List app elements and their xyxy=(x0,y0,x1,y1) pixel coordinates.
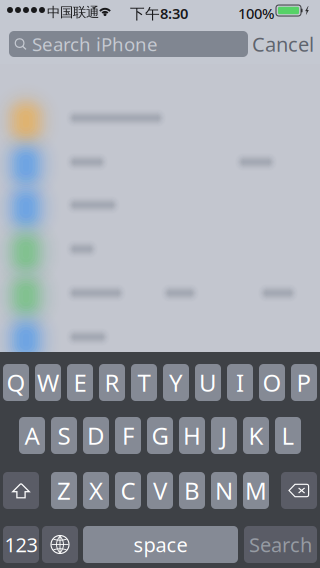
button[interactable]: Delete xyxy=(281,472,317,509)
button[interactable]: F xyxy=(115,417,141,454)
button[interactable]: X xyxy=(83,472,109,509)
button[interactable]: Q xyxy=(3,364,29,401)
button[interactable]: K xyxy=(243,417,269,454)
staticText: Q xyxy=(6,367,25,398)
button[interactable]: J xyxy=(211,417,237,454)
staticText: O xyxy=(262,367,281,398)
button[interactable]: L xyxy=(275,417,301,454)
button[interactable]: O xyxy=(259,364,285,401)
staticText: A xyxy=(24,420,39,451)
button[interactable]: S xyxy=(51,417,77,454)
button[interactable]: U xyxy=(195,364,221,401)
button[interactable]: H xyxy=(179,417,205,454)
staticText: Search iPhone xyxy=(32,32,158,56)
button[interactable]: E xyxy=(67,364,93,401)
button[interactable]: M xyxy=(243,472,269,509)
staticText: 100% xyxy=(238,3,274,23)
staticText: Search xyxy=(249,531,312,558)
staticText: H xyxy=(183,420,201,451)
button[interactable]: A xyxy=(19,417,45,454)
button[interactable]: P xyxy=(291,364,317,401)
button[interactable]: Search xyxy=(244,526,317,563)
staticText: 123 xyxy=(4,531,37,558)
button[interactable]: Z xyxy=(51,472,77,509)
staticText: L xyxy=(281,420,294,451)
staticText: R xyxy=(104,367,119,398)
staticText: I xyxy=(236,367,244,398)
button[interactable]: space xyxy=(83,526,238,563)
staticText: P xyxy=(296,367,311,398)
staticText: T xyxy=(137,367,150,398)
staticText: U xyxy=(199,367,217,398)
button[interactable]: 123 xyxy=(3,526,39,563)
button[interactable]: W xyxy=(35,364,61,401)
staticText: X xyxy=(89,475,103,506)
staticText: S xyxy=(57,420,70,451)
button[interactable]: Next keyboard xyxy=(42,526,78,563)
button[interactable]: G xyxy=(147,417,173,454)
staticText: 下午8:30 xyxy=(130,3,188,23)
staticText: Cancel xyxy=(252,31,314,57)
button[interactable]: Y xyxy=(163,364,189,401)
button[interactable]: V xyxy=(147,472,173,509)
button[interactable]: I xyxy=(227,364,253,401)
staticText: G xyxy=(151,420,168,451)
button[interactable]: C xyxy=(115,472,141,509)
button[interactable]: N xyxy=(211,472,237,509)
staticText: D xyxy=(87,420,105,451)
staticText: N xyxy=(215,475,233,506)
staticText: V xyxy=(153,475,167,506)
staticText: Y xyxy=(169,367,183,398)
button[interactable]: Shift xyxy=(3,472,39,509)
staticText: 中国联通 xyxy=(47,4,99,20)
button[interactable]: Search iPhone xyxy=(9,31,248,57)
staticText: E xyxy=(73,367,86,398)
staticText: K xyxy=(248,420,263,451)
staticText: C xyxy=(120,475,135,506)
staticText: M xyxy=(245,475,267,506)
button[interactable]: T xyxy=(131,364,157,401)
button[interactable]: B xyxy=(179,472,205,509)
button[interactable]: Cancel xyxy=(252,31,314,57)
staticText: space xyxy=(133,531,187,558)
button[interactable]: R xyxy=(99,364,125,401)
button[interactable]: D xyxy=(83,417,109,454)
staticText: Z xyxy=(57,475,71,506)
staticText: F xyxy=(122,420,134,451)
staticText: B xyxy=(184,475,200,506)
staticText: J xyxy=(220,420,227,451)
staticText: W xyxy=(37,367,59,398)
